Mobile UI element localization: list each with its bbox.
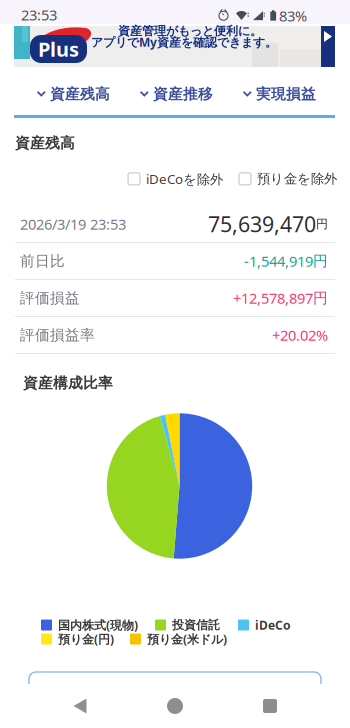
staticText: 円 xyxy=(313,252,328,270)
button[interactable]: 資産残高 xyxy=(22,78,125,110)
staticText: 資産残高 xyxy=(15,134,75,152)
staticText: 83% xyxy=(279,6,307,25)
button[interactable]: 実現損益 xyxy=(228,78,331,110)
staticText: 投資信託 xyxy=(172,618,220,632)
staticText: 円 xyxy=(316,217,328,231)
button[interactable]: 預り金を除外 xyxy=(239,169,337,189)
button[interactable]: Back xyxy=(44,687,116,725)
staticText: 23:53 xyxy=(21,5,57,24)
staticText: 資産推移 xyxy=(153,85,213,103)
staticText: -1,544,919 xyxy=(244,251,313,271)
staticText: 資産残高 xyxy=(50,85,110,103)
staticText: 資産管理がもっと便利に。 xyxy=(118,24,262,38)
staticText: 75,639,470 xyxy=(208,210,316,238)
staticText: +20.02% xyxy=(272,325,328,345)
staticText: 評価損益 xyxy=(20,289,80,307)
staticText: iDeCo xyxy=(255,617,291,633)
staticText: 資産構成比率 xyxy=(23,374,113,392)
staticText: +12,578,897 xyxy=(233,288,313,308)
staticText: 評価損益率 xyxy=(20,326,95,344)
staticText: 国内株式(現物) xyxy=(58,617,138,633)
staticText: 前日比 xyxy=(20,252,65,270)
staticText: Plus xyxy=(38,36,79,62)
staticText: iDeCoを除外 xyxy=(146,170,223,188)
button[interactable]: Recents xyxy=(234,687,306,725)
staticText: アプリでMy資産を確認できます。 xyxy=(91,34,277,50)
staticText: 実現損益 xyxy=(256,85,316,103)
staticText: 預り金(円) xyxy=(58,631,114,647)
button[interactable]: 資産推移 xyxy=(125,78,228,110)
staticText: 預り金を除外 xyxy=(257,171,337,187)
staticText: 円 xyxy=(313,289,328,307)
staticText: 2026/3/19 23:53 xyxy=(20,214,126,234)
button[interactable]: 資産管理がもっと便利に。アプリでMy資産を確認できます。 xyxy=(14,26,335,67)
staticText: 預り金(米ドル) xyxy=(147,631,227,647)
button[interactable]: Home xyxy=(139,687,211,725)
button[interactable]: iDeCoを除外 xyxy=(128,168,223,190)
